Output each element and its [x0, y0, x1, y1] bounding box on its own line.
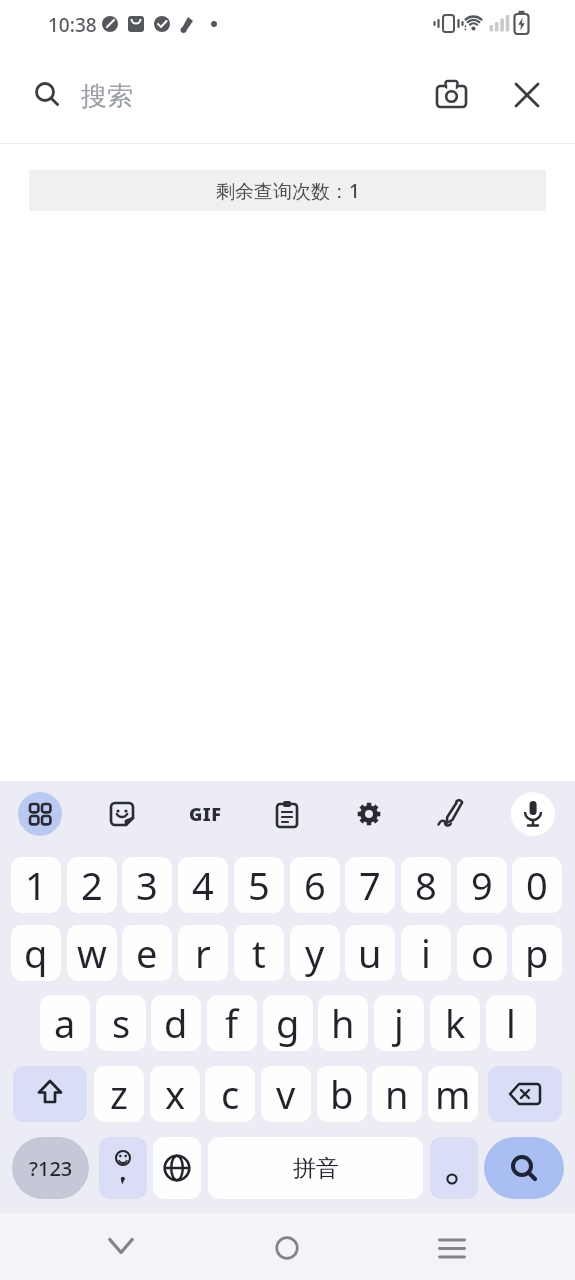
button[interactable]: a — [40, 995, 90, 1051]
staticText: b — [330, 1068, 354, 1120]
staticText: 6 — [304, 859, 326, 911]
staticText: 8 — [415, 859, 437, 911]
button[interactable]: 0 — [512, 857, 562, 913]
button[interactable]: 4 — [178, 857, 228, 913]
staticText: 1 — [25, 859, 47, 911]
button[interactable]: k — [430, 995, 480, 1051]
staticText: m — [435, 1068, 471, 1120]
staticText: o — [471, 927, 494, 979]
staticText: u — [358, 927, 382, 979]
staticText: w — [77, 927, 107, 979]
staticText: 5 — [248, 859, 270, 911]
button[interactable]: s — [96, 995, 146, 1051]
button[interactable]: x — [150, 1066, 200, 1122]
button[interactable]: 6 — [290, 857, 340, 913]
staticText: k — [445, 997, 466, 1049]
button[interactable]: GIF — [183, 792, 227, 836]
staticText: f — [225, 997, 239, 1049]
button[interactable]: 2 — [67, 857, 117, 913]
button[interactable]: o — [457, 925, 507, 981]
staticText: 拼音 — [293, 1154, 339, 1183]
button[interactable]: r — [178, 925, 228, 981]
button[interactable] — [430, 1137, 478, 1199]
button[interactable] — [99, 1226, 143, 1270]
button[interactable]: w — [67, 925, 117, 981]
button[interactable]: f — [207, 995, 257, 1051]
staticText: x — [165, 1068, 186, 1120]
button[interactable]: ?123 — [12, 1137, 89, 1199]
button[interactable]: 3 — [122, 857, 172, 913]
button[interactable] — [511, 792, 555, 836]
staticText: d — [164, 997, 188, 1049]
button[interactable] — [347, 792, 391, 836]
staticText: l — [506, 997, 516, 1049]
staticText: n — [385, 1068, 409, 1120]
button[interactable]: i — [401, 925, 451, 981]
button[interactable]: l — [486, 995, 536, 1051]
button[interactable] — [430, 73, 474, 117]
staticText: z — [110, 1068, 128, 1120]
staticText: q — [24, 927, 48, 979]
staticText: 10:38 — [48, 12, 97, 38]
button[interactable]: 9 — [457, 857, 507, 913]
button[interactable] — [100, 792, 144, 836]
button[interactable]: p — [512, 925, 562, 981]
button[interactable]: m — [428, 1066, 478, 1122]
staticText: g — [276, 997, 300, 1049]
button[interactable]: 8 — [401, 857, 451, 913]
button[interactable]: b — [317, 1066, 367, 1122]
button[interactable]: t — [234, 925, 284, 981]
staticText: e — [136, 927, 158, 979]
button[interactable]: v — [261, 1066, 311, 1122]
button[interactable] — [430, 1226, 474, 1270]
button[interactable]: u — [345, 925, 395, 981]
staticText: 2 — [81, 859, 103, 911]
button[interactable] — [18, 792, 62, 836]
button[interactable]: 拼音 — [208, 1137, 423, 1199]
staticText: a — [54, 997, 76, 1049]
staticText: p — [525, 927, 549, 979]
staticText: 3 — [136, 859, 158, 911]
button[interactable]: d — [151, 995, 201, 1051]
button[interactable]: 7 — [345, 857, 395, 913]
button[interactable] — [265, 1226, 309, 1270]
button[interactable] — [429, 792, 473, 836]
staticText: r — [195, 927, 211, 979]
button[interactable]: q — [11, 925, 61, 981]
button[interactable] — [484, 1137, 564, 1199]
button[interactable] — [153, 1137, 201, 1199]
button[interactable] — [265, 792, 309, 836]
button[interactable]: g — [263, 995, 313, 1051]
staticText: t — [252, 927, 266, 979]
button[interactable]: y — [290, 925, 340, 981]
staticText: s — [112, 997, 131, 1049]
staticText: h — [331, 997, 355, 1049]
button[interactable] — [99, 1137, 147, 1199]
button[interactable] — [13, 1066, 87, 1122]
button[interactable]: e — [122, 925, 172, 981]
staticText: ?123 — [29, 1155, 73, 1182]
button[interactable]: j — [374, 995, 424, 1051]
button[interactable]: 5 — [234, 857, 284, 913]
button[interactable] — [28, 75, 68, 115]
staticText: 搜索 — [81, 80, 133, 113]
staticText: 0 — [526, 859, 548, 911]
staticText: v — [276, 1068, 296, 1120]
button[interactable]: h — [318, 995, 368, 1051]
button[interactable]: c — [205, 1066, 255, 1122]
staticText: i — [421, 927, 431, 979]
staticText: 9 — [471, 859, 493, 911]
staticText: c — [221, 1068, 240, 1120]
staticText: 7 — [359, 859, 381, 911]
staticText: GIF — [189, 802, 222, 827]
staticText: 4 — [192, 859, 214, 911]
button[interactable] — [505, 73, 549, 117]
button[interactable]: 1 — [11, 857, 61, 913]
button[interactable]: n — [372, 1066, 422, 1122]
staticText: j — [394, 997, 404, 1049]
button[interactable] — [488, 1066, 562, 1122]
staticText: 剩余查询次数：1 — [216, 178, 360, 204]
staticText: y — [305, 927, 325, 979]
button[interactable]: z — [94, 1066, 144, 1122]
